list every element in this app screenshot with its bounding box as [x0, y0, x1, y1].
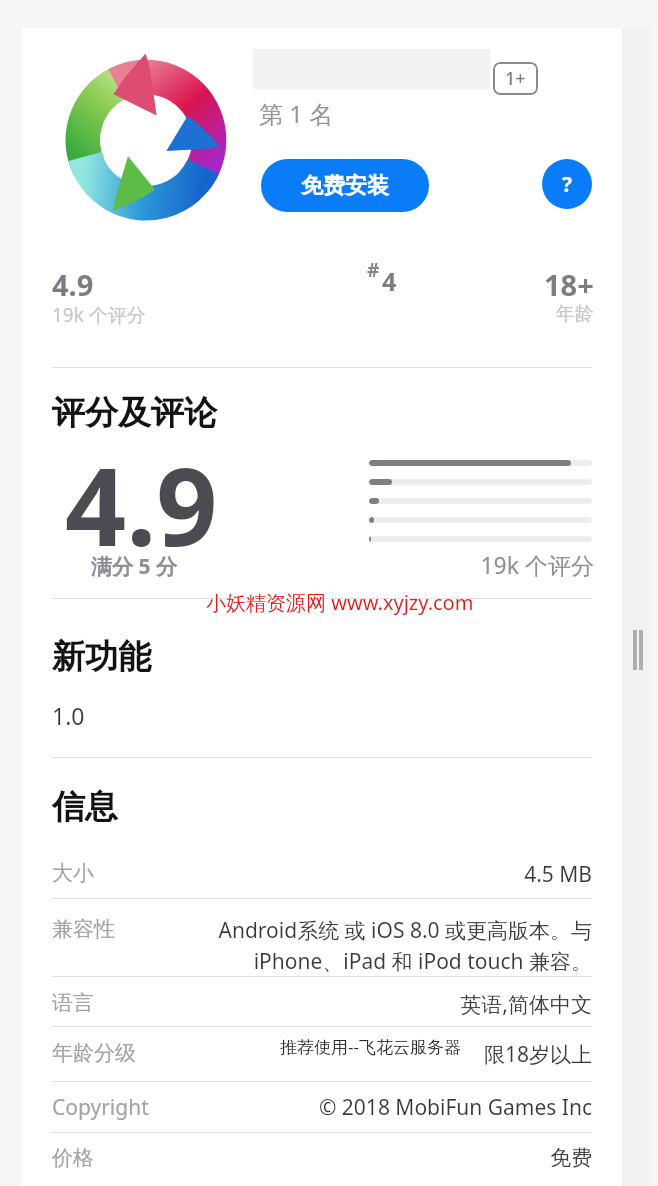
button[interactable]: 免费安装 — [261, 159, 429, 212]
button[interactable]: App icon — [62, 50, 230, 226]
staticText: 年龄 — [556, 302, 594, 326]
staticText: 新功能 — [52, 636, 151, 678]
staticText: 小妖精资源网 www.xyjzy.com — [206, 589, 474, 616]
button[interactable]: 年龄分级 — [52, 1028, 592, 1081]
staticText: 满分 5 分 — [91, 552, 177, 581]
staticText: 第 1 名 — [259, 97, 334, 130]
button[interactable]: 1+ — [493, 62, 538, 95]
staticText: Android系统 或 iOS 8.0 或更高版本。与 iPhone、iPad … — [172, 916, 592, 975]
staticText: 19k 个评分 — [352, 549, 594, 580]
staticText: 免费安装 — [301, 172, 389, 200]
staticText: 年龄分级 — [52, 1040, 172, 1066]
staticText: 4.5 MB — [172, 860, 592, 889]
staticText: # — [367, 257, 380, 283]
button[interactable]: 语言 — [52, 978, 592, 1031]
staticText: 信息 — [52, 786, 118, 828]
staticText: 1.0 — [52, 700, 85, 731]
staticText: 1+ — [505, 66, 526, 91]
staticText: ? — [562, 170, 573, 199]
staticText: Copyright — [52, 1093, 172, 1122]
staticText: 语言 — [52, 990, 172, 1016]
other: Resize panel — [633, 630, 643, 670]
button[interactable]: 大小 — [52, 848, 592, 901]
staticText: © 2018 MobiFun Games Inc — [172, 1093, 592, 1122]
staticText: 评分及评论 — [52, 392, 217, 434]
staticText: 免费 — [172, 1145, 592, 1171]
button[interactable]: 价格 — [52, 1133, 592, 1183]
staticText: 英语,简体中文 — [172, 990, 592, 1019]
staticText: 价格 — [52, 1145, 172, 1171]
staticText: 大小 — [52, 860, 172, 886]
button[interactable]: 兼容性 — [52, 904, 592, 987]
staticText: 限18岁以上 — [172, 1040, 592, 1069]
button[interactable]: Copyright — [52, 1081, 592, 1134]
staticText: 4 — [382, 264, 397, 298]
staticText: 18+ — [544, 265, 594, 304]
staticText: 4.9 — [52, 265, 94, 304]
staticText: 兼容性 — [52, 916, 172, 942]
staticText: 推荐使用--飞花云服务器 — [280, 1035, 461, 1058]
staticText: 4.9 — [65, 432, 218, 578]
button[interactable]: Help — [542, 159, 592, 209]
staticText: 19k 个评分 — [52, 302, 146, 328]
